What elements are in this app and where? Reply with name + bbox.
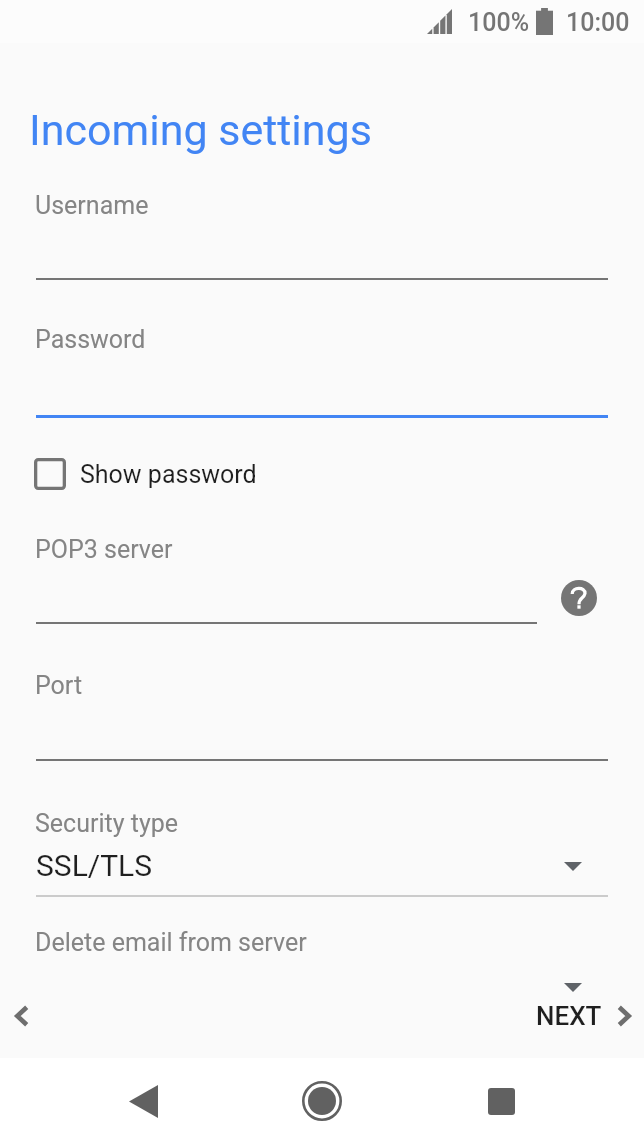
staticText: Show password	[80, 460, 257, 489]
button[interactable]: Recents	[465, 1065, 537, 1137]
staticText: POP3 server	[35, 535, 173, 564]
staticText: Password	[35, 325, 146, 354]
staticText: Username	[35, 191, 149, 220]
button[interactable]: SSL/TLS	[36, 848, 153, 883]
staticText: NEXT	[536, 1001, 602, 1031]
button[interactable]: Help	[561, 580, 597, 616]
staticText: SSL/TLS	[36, 848, 153, 883]
staticText: 10:00	[566, 8, 630, 37]
staticText: Incoming settings	[29, 105, 372, 155]
button[interactable]: Previous	[0, 994, 44, 1038]
staticText: 100%	[468, 8, 530, 37]
button[interactable]: Home	[286, 1065, 358, 1137]
staticText: Delete email from server	[35, 928, 307, 957]
button[interactable]: Back	[107, 1065, 179, 1137]
button[interactable]: NEXT	[536, 994, 644, 1038]
button[interactable]: Show password	[34, 457, 257, 491]
staticText: Security type	[35, 809, 179, 838]
staticText: Port	[35, 671, 83, 700]
